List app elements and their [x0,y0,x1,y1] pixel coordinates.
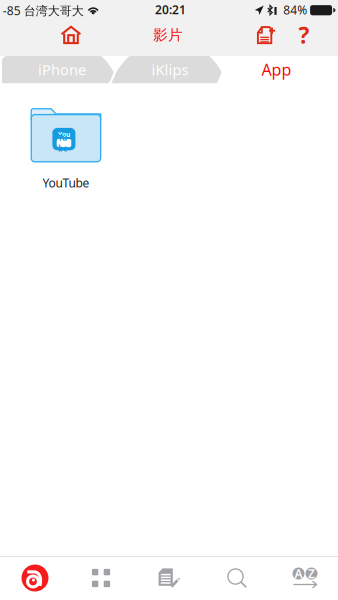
staticText: Z [308,565,315,581]
button[interactable]: Grid view [67,556,134,599]
button[interactable]: 影片 [141,18,195,52]
staticText: -85 台湾大哥大 [3,2,84,18]
button[interactable]: New document [246,18,286,52]
staticText: YouTube [42,175,89,191]
staticText: iKlips [151,60,188,79]
staticText: A [294,565,302,581]
button[interactable]: Search [203,556,270,599]
staticText: Tube [58,132,70,154]
button[interactable]: Brand [1,556,68,599]
staticText: iPhone [38,60,86,79]
button[interactable]: Home [45,18,97,52]
button[interactable]: App [224,56,328,83]
staticText: 20:21 [155,2,186,17]
button[interactable]: Edit [135,556,202,599]
button[interactable]: iPhone [10,56,114,83]
staticText: You [58,130,70,139]
staticText: 影片 [153,26,183,44]
button[interactable]: Help [291,18,317,52]
button[interactable]: You [20,106,111,190]
button[interactable]: Sort [271,556,338,599]
staticText: App [261,59,291,80]
button[interactable]: iKlips [119,56,221,83]
staticText: ? [298,20,309,50]
staticText: 84% [283,2,307,18]
